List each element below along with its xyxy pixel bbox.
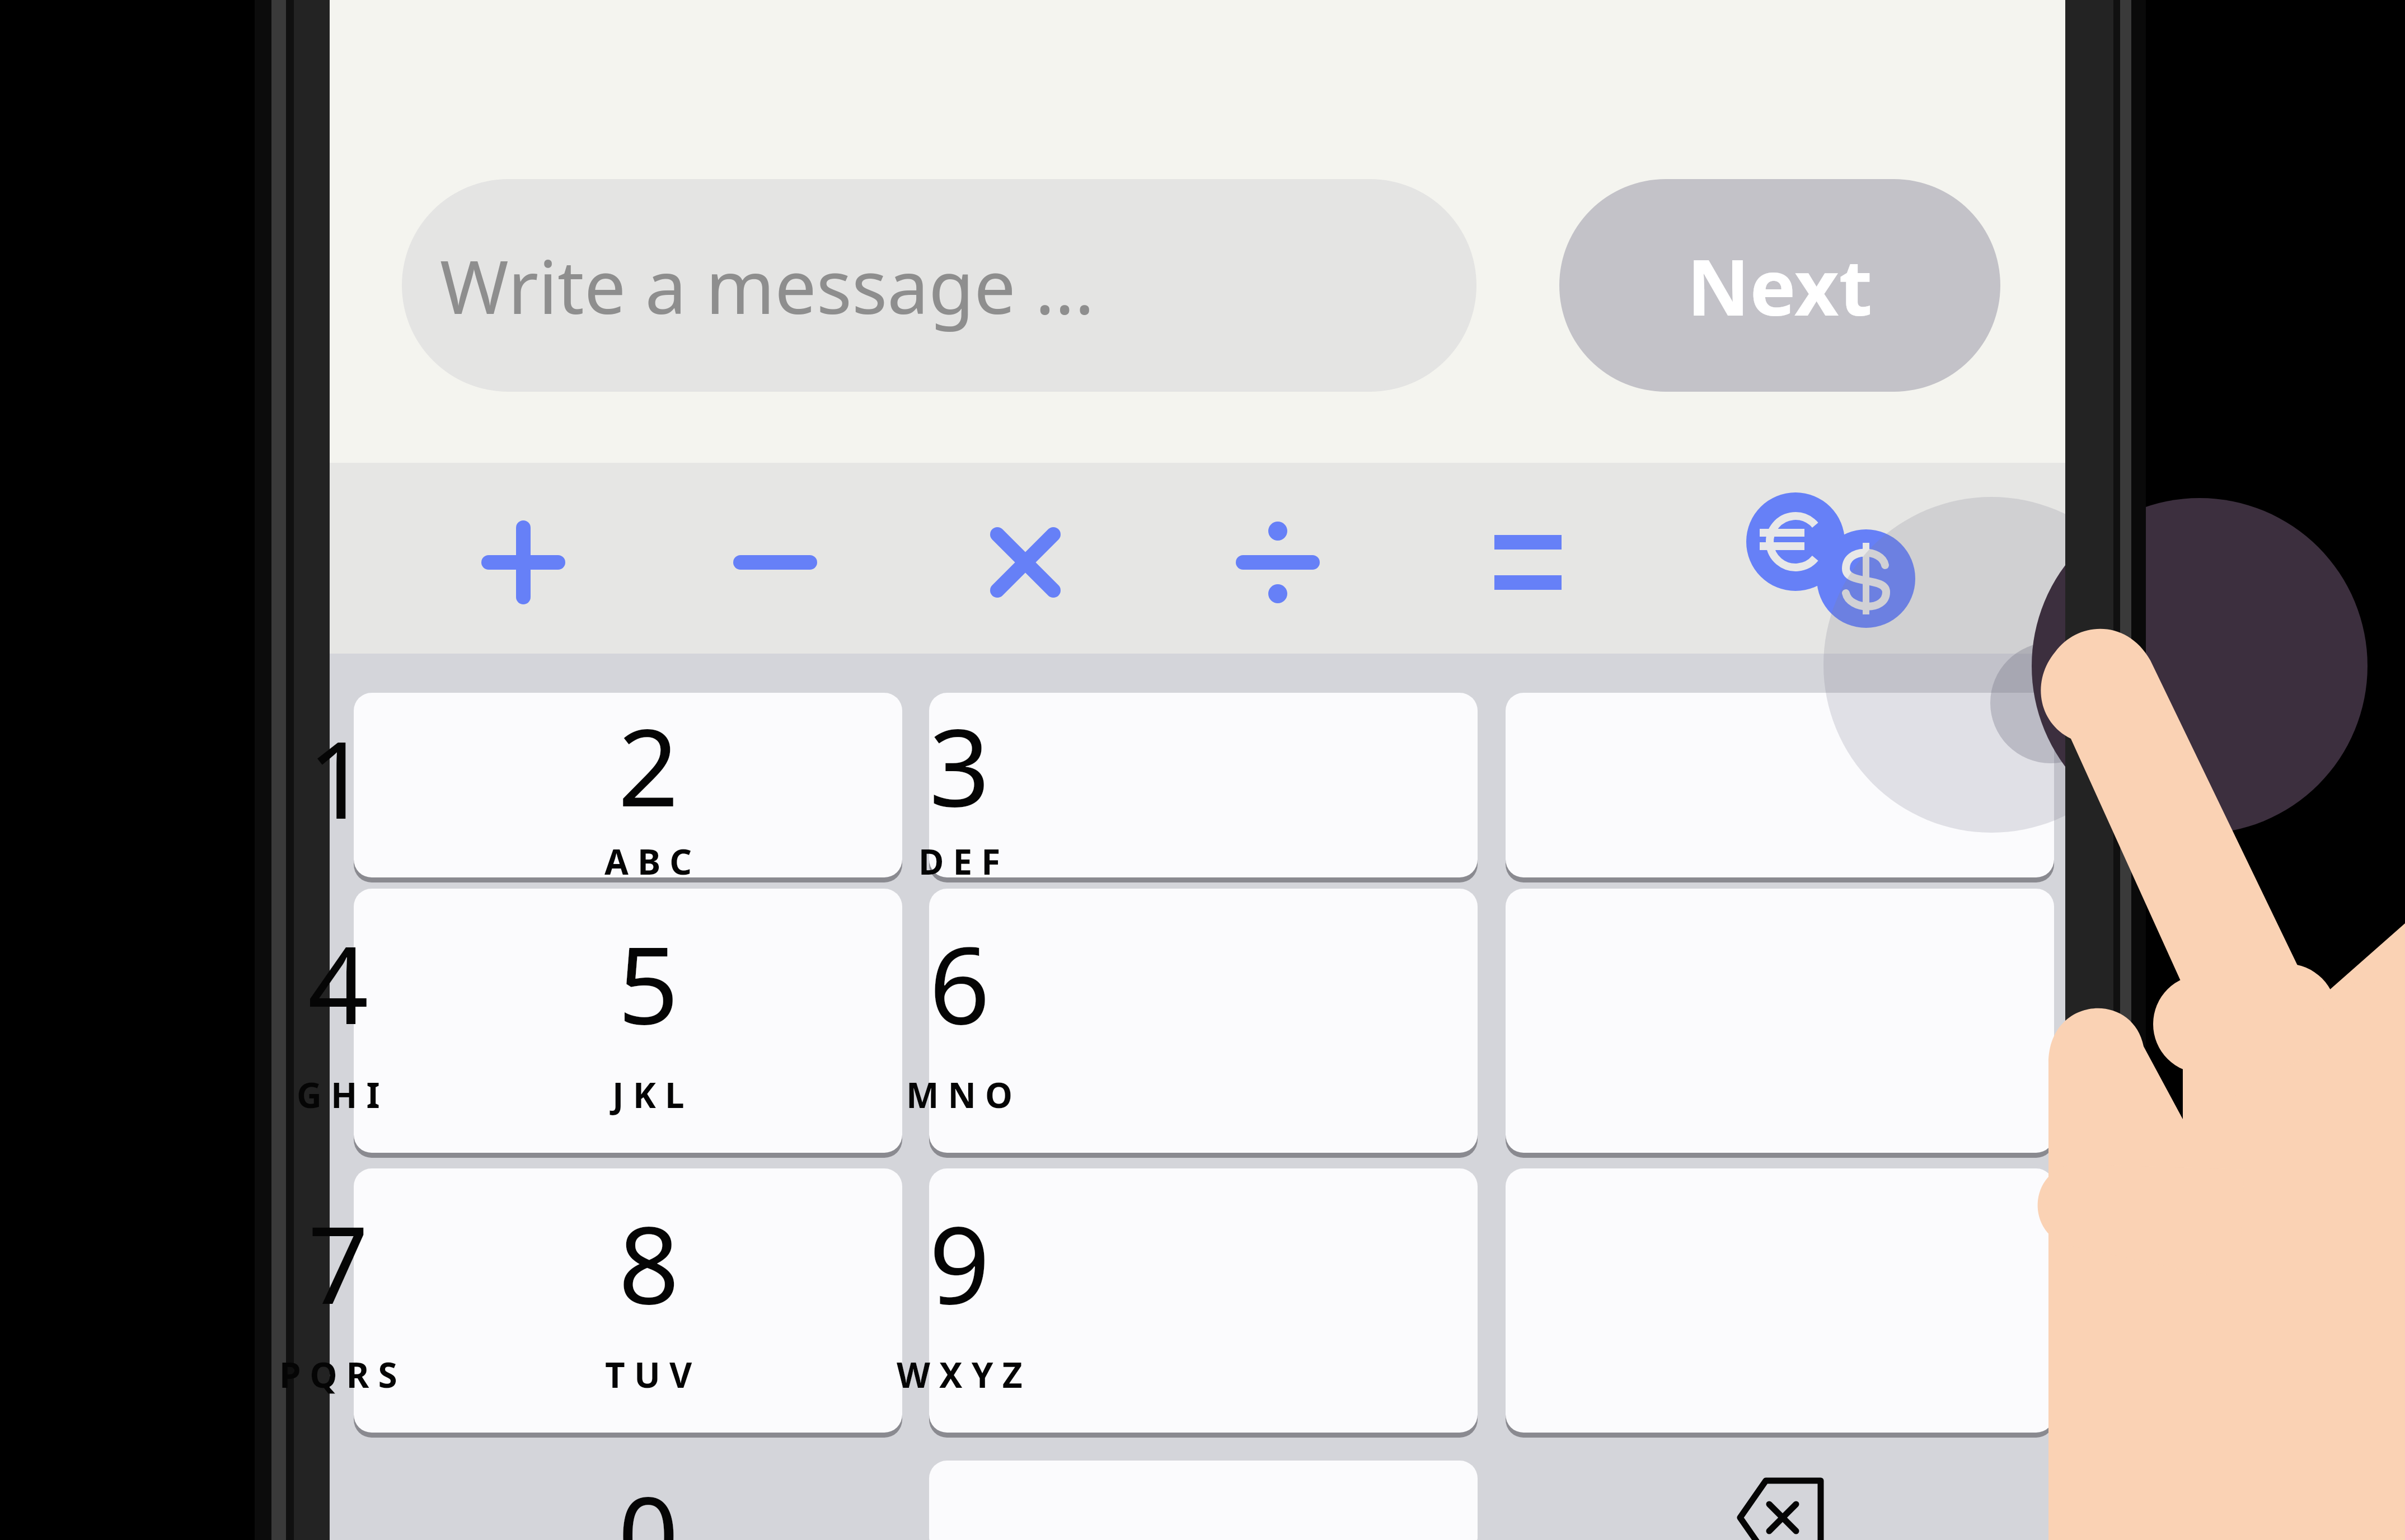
button[interactable]: 0 — [500, 1461, 796, 1540]
staticText: 1 — [308, 705, 369, 850]
staticText: 0 — [618, 1461, 679, 1540]
button[interactable]: Next — [1559, 179, 2000, 392]
button[interactable]: Plus — [251, 463, 320, 654]
button[interactable]: 7 — [190, 1168, 486, 1433]
staticText: W X Y Z — [897, 1351, 1023, 1398]
button[interactable]: 2 — [500, 693, 796, 877]
staticText: Write a message ... — [440, 235, 1095, 336]
staticText: 3 — [929, 693, 990, 838]
staticText: T U V — [605, 1351, 692, 1398]
button[interactable]: 4 — [190, 889, 486, 1153]
staticText: 2 — [618, 693, 679, 838]
staticText: Next — [1687, 233, 1873, 338]
staticText: A B C — [604, 838, 692, 877]
button[interactable]: 3 — [812, 693, 1108, 877]
staticText: 5 — [618, 910, 679, 1055]
button[interactable]: Write a message ... — [402, 179, 1476, 392]
staticText: 8 — [618, 1190, 679, 1335]
staticText: M N O — [906, 1071, 1013, 1118]
button[interactable]: Multiply — [534, 463, 603, 654]
staticText: 4 — [308, 910, 369, 1055]
button[interactable]: 1 — [190, 693, 486, 877]
staticText: J K L — [612, 1071, 685, 1118]
button[interactable]: Currency converter — [959, 463, 1053, 654]
staticText: 9 — [929, 1190, 990, 1335]
staticText: 6 — [929, 910, 990, 1055]
button[interactable]: 8 — [500, 1168, 796, 1433]
staticText: P Q R S — [279, 1351, 397, 1398]
button[interactable]: 9 — [812, 1168, 1108, 1433]
staticText: G H I — [297, 1071, 380, 1118]
staticText: D E F — [918, 838, 1001, 877]
button[interactable]: Backspace — [812, 1461, 1108, 1540]
button[interactable]: 5 — [500, 889, 796, 1153]
button[interactable]: Divide — [676, 463, 745, 654]
staticText: 7 — [308, 1190, 369, 1335]
button[interactable]: 6 — [812, 889, 1108, 1153]
